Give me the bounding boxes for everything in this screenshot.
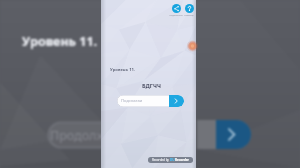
- staticText: Поделиться: [169, 14, 183, 17]
- button[interactable]: Подсказки: [117, 95, 184, 107]
- button[interactable]: Поделиться: [168, 4, 184, 20]
- staticText: Recorded by: [152, 158, 170, 162]
- staticText: DU: [170, 158, 175, 162]
- staticText: Продолж: [50, 127, 106, 144]
- staticText: Recorder: [175, 158, 189, 162]
- button[interactable]: Отправить: [169, 95, 184, 107]
- button[interactable]: Помощь: [181, 4, 197, 20]
- staticText: Уровень 11.: [110, 67, 136, 73]
- staticText: БДГЧЧ: [142, 82, 161, 89]
- staticText: Помощь: [184, 14, 194, 17]
- staticText: Подсказки: [121, 98, 143, 104]
- staticText: Уровень 11.: [22, 33, 98, 50]
